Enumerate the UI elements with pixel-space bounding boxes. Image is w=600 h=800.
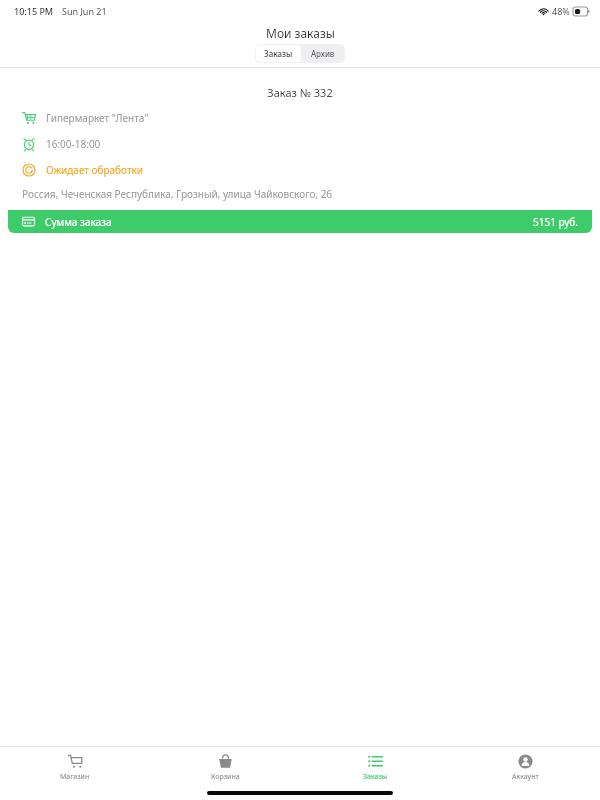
staticText: 48%: [552, 5, 570, 17]
button[interactable]: Аккаунт: [450, 747, 600, 788]
staticText: Ожидает обработки: [46, 163, 144, 177]
staticText: Заказ № 332: [267, 85, 333, 100]
staticText: Аккаунт: [512, 772, 539, 782]
staticText: Сумма заказа: [45, 215, 112, 229]
button[interactable]: Заказ № 332: [8, 79, 592, 233]
staticText: 5151 руб.: [533, 215, 578, 229]
button[interactable]: Магазин: [0, 747, 150, 788]
staticText: 10:15 PM: [14, 5, 54, 17]
staticText: Россия, Чеченская Республика, Грозный, у…: [22, 187, 333, 201]
staticText: Мои заказы: [266, 25, 335, 41]
button[interactable]: Сумма заказа: [8, 210, 592, 233]
staticText: Корзина: [211, 772, 240, 782]
staticText: Sun Jun 21: [62, 5, 107, 17]
staticText: Магазин: [60, 772, 90, 782]
staticText: Заказы: [363, 772, 388, 782]
button[interactable]: Заказы: [300, 747, 450, 788]
button[interactable]: Архив: [301, 45, 345, 62]
button[interactable]: Корзина: [150, 747, 300, 788]
staticText: Архив: [311, 48, 335, 59]
button[interactable]: Заказы: [256, 45, 301, 62]
staticText: Заказы: [264, 48, 293, 59]
staticText: 16:00-18:00: [46, 137, 101, 151]
staticText: Гипермаркет "Лента": [46, 111, 149, 125]
